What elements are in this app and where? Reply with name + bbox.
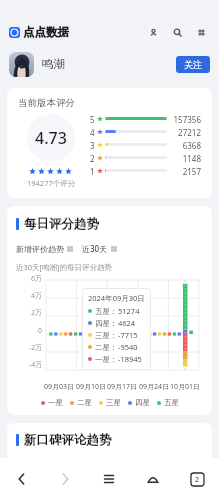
staticText: 3 [90, 140, 95, 149]
staticText: 2024年09月30日 [88, 293, 145, 303]
staticText: -9540 [118, 342, 138, 352]
staticText: 194277个评分 [27, 178, 76, 188]
button[interactable]: Menu [87, 458, 131, 500]
staticText: 1148 [171, 153, 201, 162]
staticText: 当前版本评分 [18, 97, 75, 109]
staticText: 157356 [171, 114, 201, 123]
staticText: 2万 [31, 308, 43, 318]
button[interactable]: Back [0, 458, 43, 500]
staticText: 2 [195, 475, 200, 485]
button[interactable]: Search [169, 24, 186, 41]
staticText: -18945 [118, 354, 142, 364]
staticText: 一星 [48, 398, 63, 407]
staticText: 四星 [135, 398, 150, 407]
staticText: -4万 [29, 360, 43, 370]
staticText: 4624 [118, 318, 136, 328]
staticText: -2万 [29, 343, 43, 353]
button[interactable]: Tabs [191, 473, 204, 486]
staticText: 51274 [118, 306, 140, 316]
button[interactable]: 新增评价趋势 [16, 243, 73, 255]
staticText: 近30天 [82, 243, 108, 254]
button[interactable]: Menu [193, 24, 210, 41]
staticText: 09月10日 [76, 382, 107, 392]
staticText: 三星 [106, 398, 121, 407]
button[interactable]: 关注 [176, 56, 210, 73]
staticText: 二星： [95, 343, 118, 352]
button[interactable]: Profile [145, 24, 162, 41]
button[interactable]: Forward [43, 458, 87, 500]
staticText: 五星： [95, 307, 118, 316]
staticText: 近30天[鸣潮]的每日评分趋势 [16, 262, 113, 272]
staticText: 4 [90, 127, 95, 136]
staticText: 每日评分趋势 [24, 216, 99, 232]
staticText: 0 [38, 326, 43, 336]
staticText: 6万 [31, 274, 43, 284]
staticText: 鸣潮 [42, 57, 65, 71]
staticText: 27212 [171, 127, 201, 136]
staticText: 2157 [171, 166, 201, 175]
staticText: 1 [90, 166, 95, 175]
staticText: 四星： [95, 319, 118, 328]
staticText: 4万 [31, 291, 43, 301]
staticText: 关注 [184, 59, 202, 70]
staticText: 新增评价趋势 [16, 244, 64, 254]
button[interactable]: Home [131, 458, 175, 500]
button[interactable]: 近30天 [82, 242, 117, 255]
staticText: 五星 [164, 398, 179, 407]
staticText: 三星： [95, 331, 118, 340]
staticText: 一星： [95, 355, 118, 364]
staticText: 6368 [171, 140, 201, 149]
staticText: 10月01日 [170, 382, 201, 392]
staticText: 5 [90, 114, 95, 123]
staticText: 二星 [77, 398, 92, 407]
staticText: 09月03日 [44, 382, 75, 392]
staticText: 09月17日 [107, 382, 138, 392]
staticText: 点点数据 [23, 25, 69, 39]
staticText: 4.73 [35, 127, 67, 149]
staticText: 2 [90, 153, 95, 162]
staticText: -7715 [118, 330, 138, 340]
staticText: 新口碑评论趋势 [24, 432, 112, 448]
staticText: 09月24日 [139, 382, 170, 392]
